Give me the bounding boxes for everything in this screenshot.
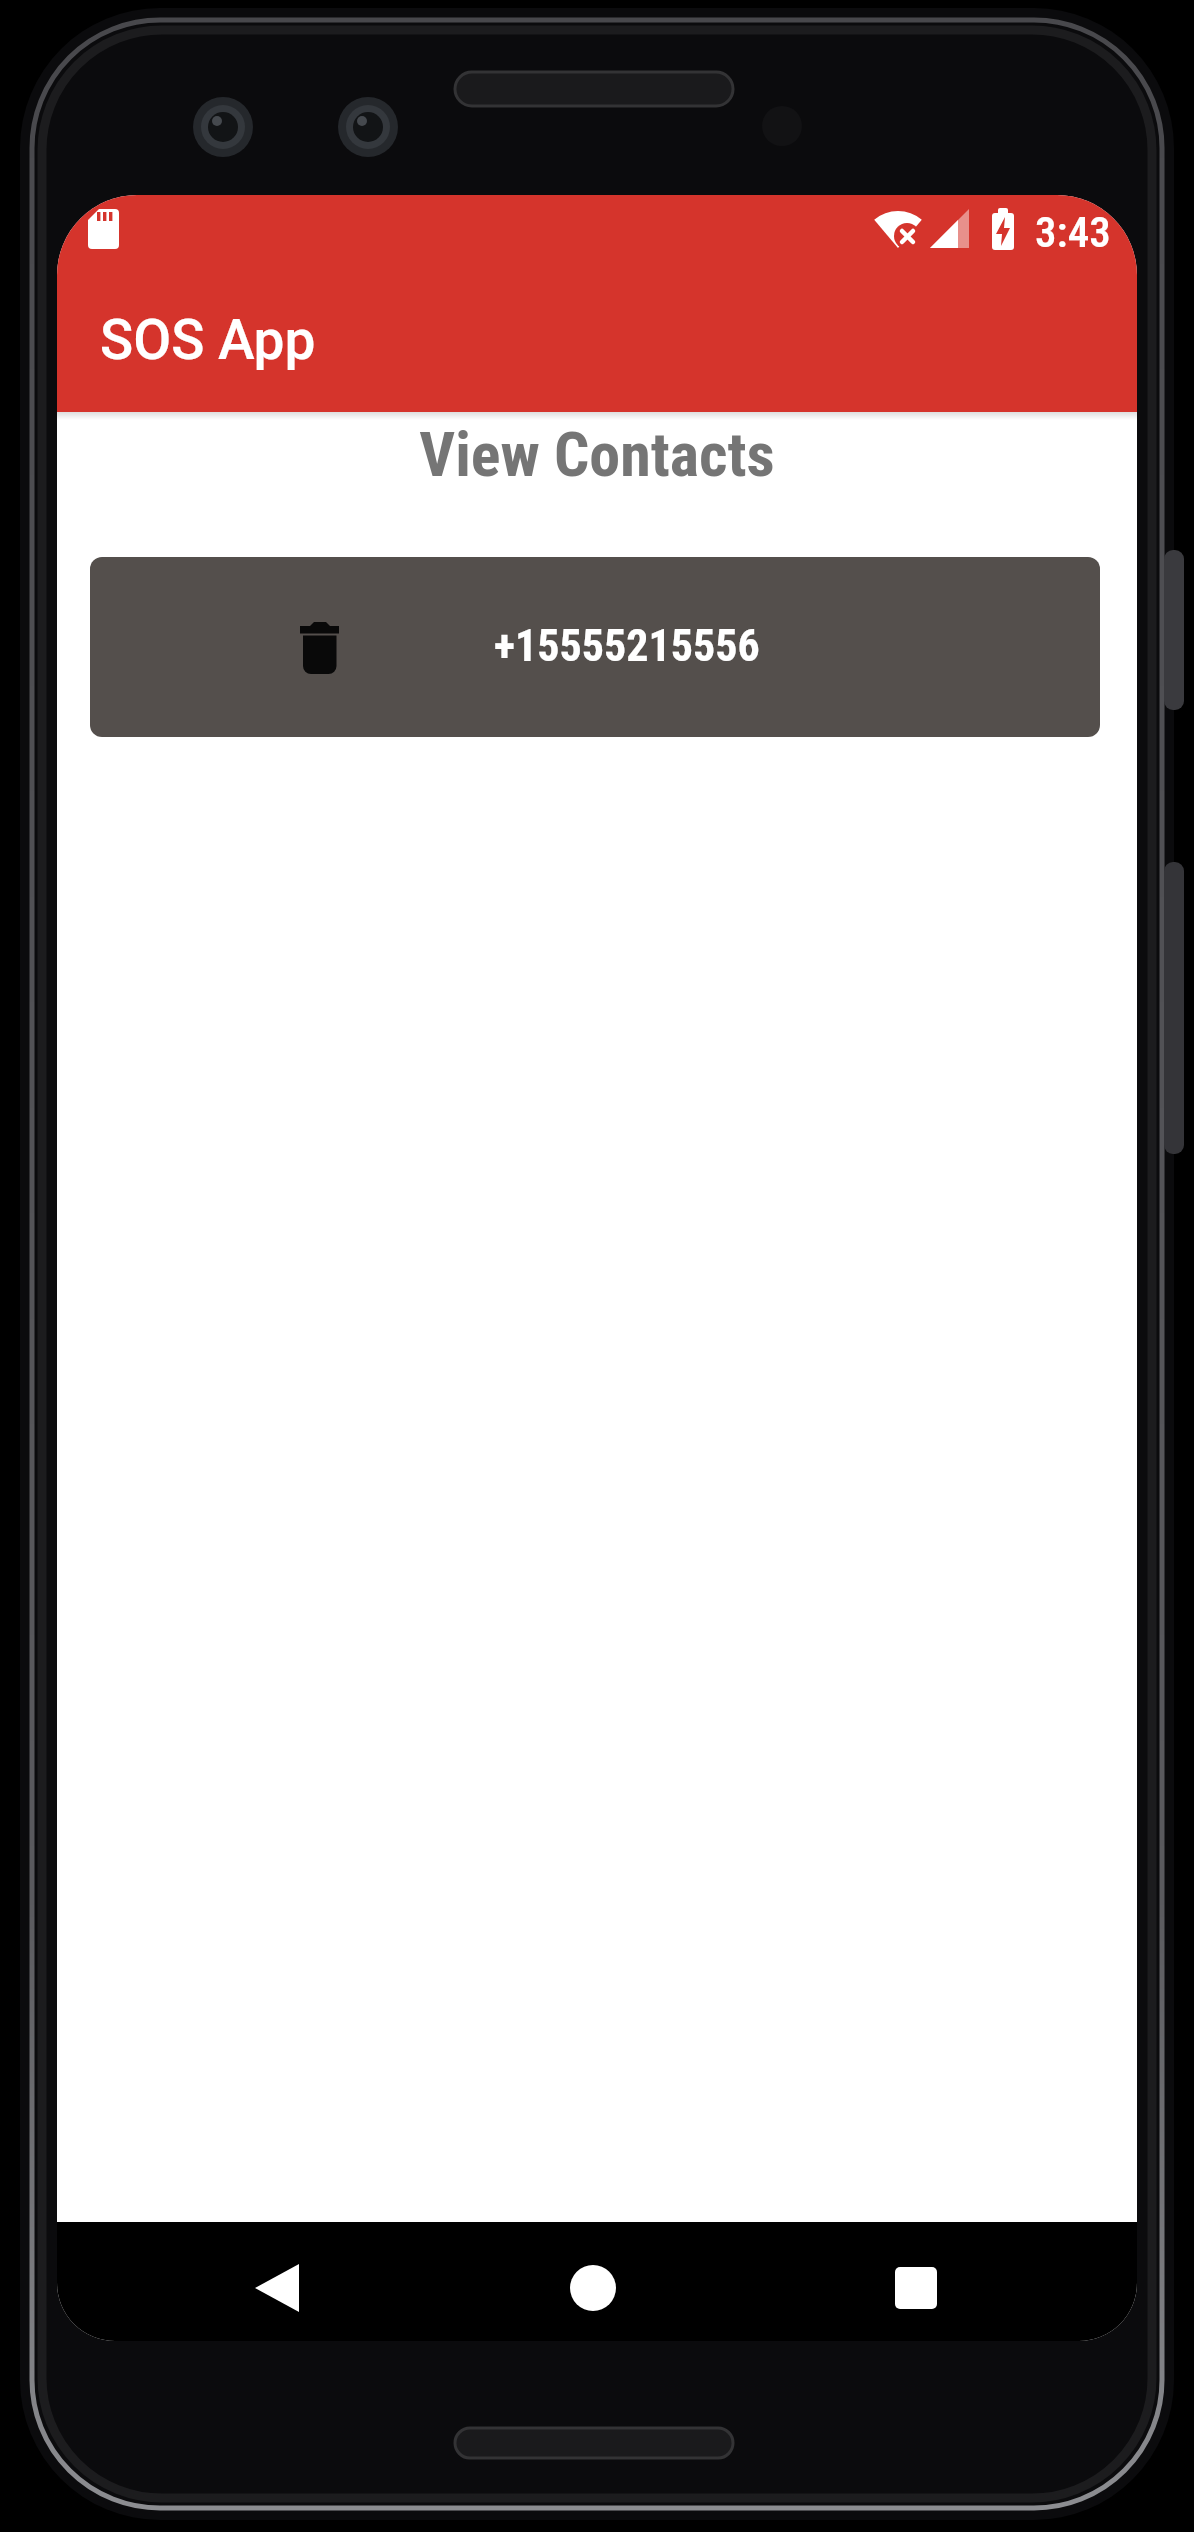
button[interactable]: +15555215556 — [90, 557, 1100, 737]
staticText: SOS App — [100, 308, 316, 372]
staticText: +15555215556 — [494, 620, 760, 672]
button[interactable] — [553, 2254, 633, 2322]
staticText: View Contacts — [57, 418, 1137, 491]
staticText: 3:43 — [1035, 207, 1111, 257]
button[interactable] — [237, 2254, 317, 2322]
button[interactable] — [876, 2254, 956, 2322]
